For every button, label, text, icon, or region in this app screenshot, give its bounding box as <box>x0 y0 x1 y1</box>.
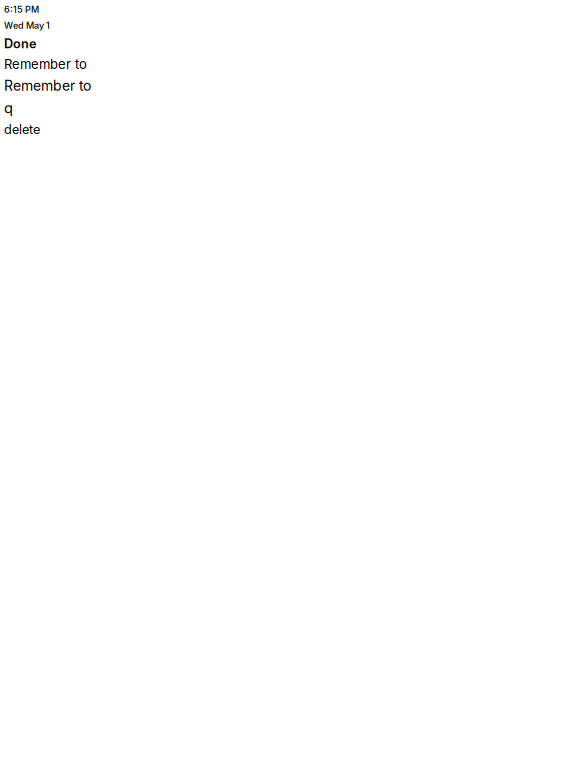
staticText: q <box>4 99 13 117</box>
staticText: Remember to <box>4 77 91 94</box>
staticText: Remember to <box>4 56 87 72</box>
staticText: delete <box>4 122 40 137</box>
staticText: Wed May 1 <box>4 20 50 31</box>
staticText: 6:15 PM <box>4 4 39 15</box>
staticText: Done <box>4 36 36 51</box>
